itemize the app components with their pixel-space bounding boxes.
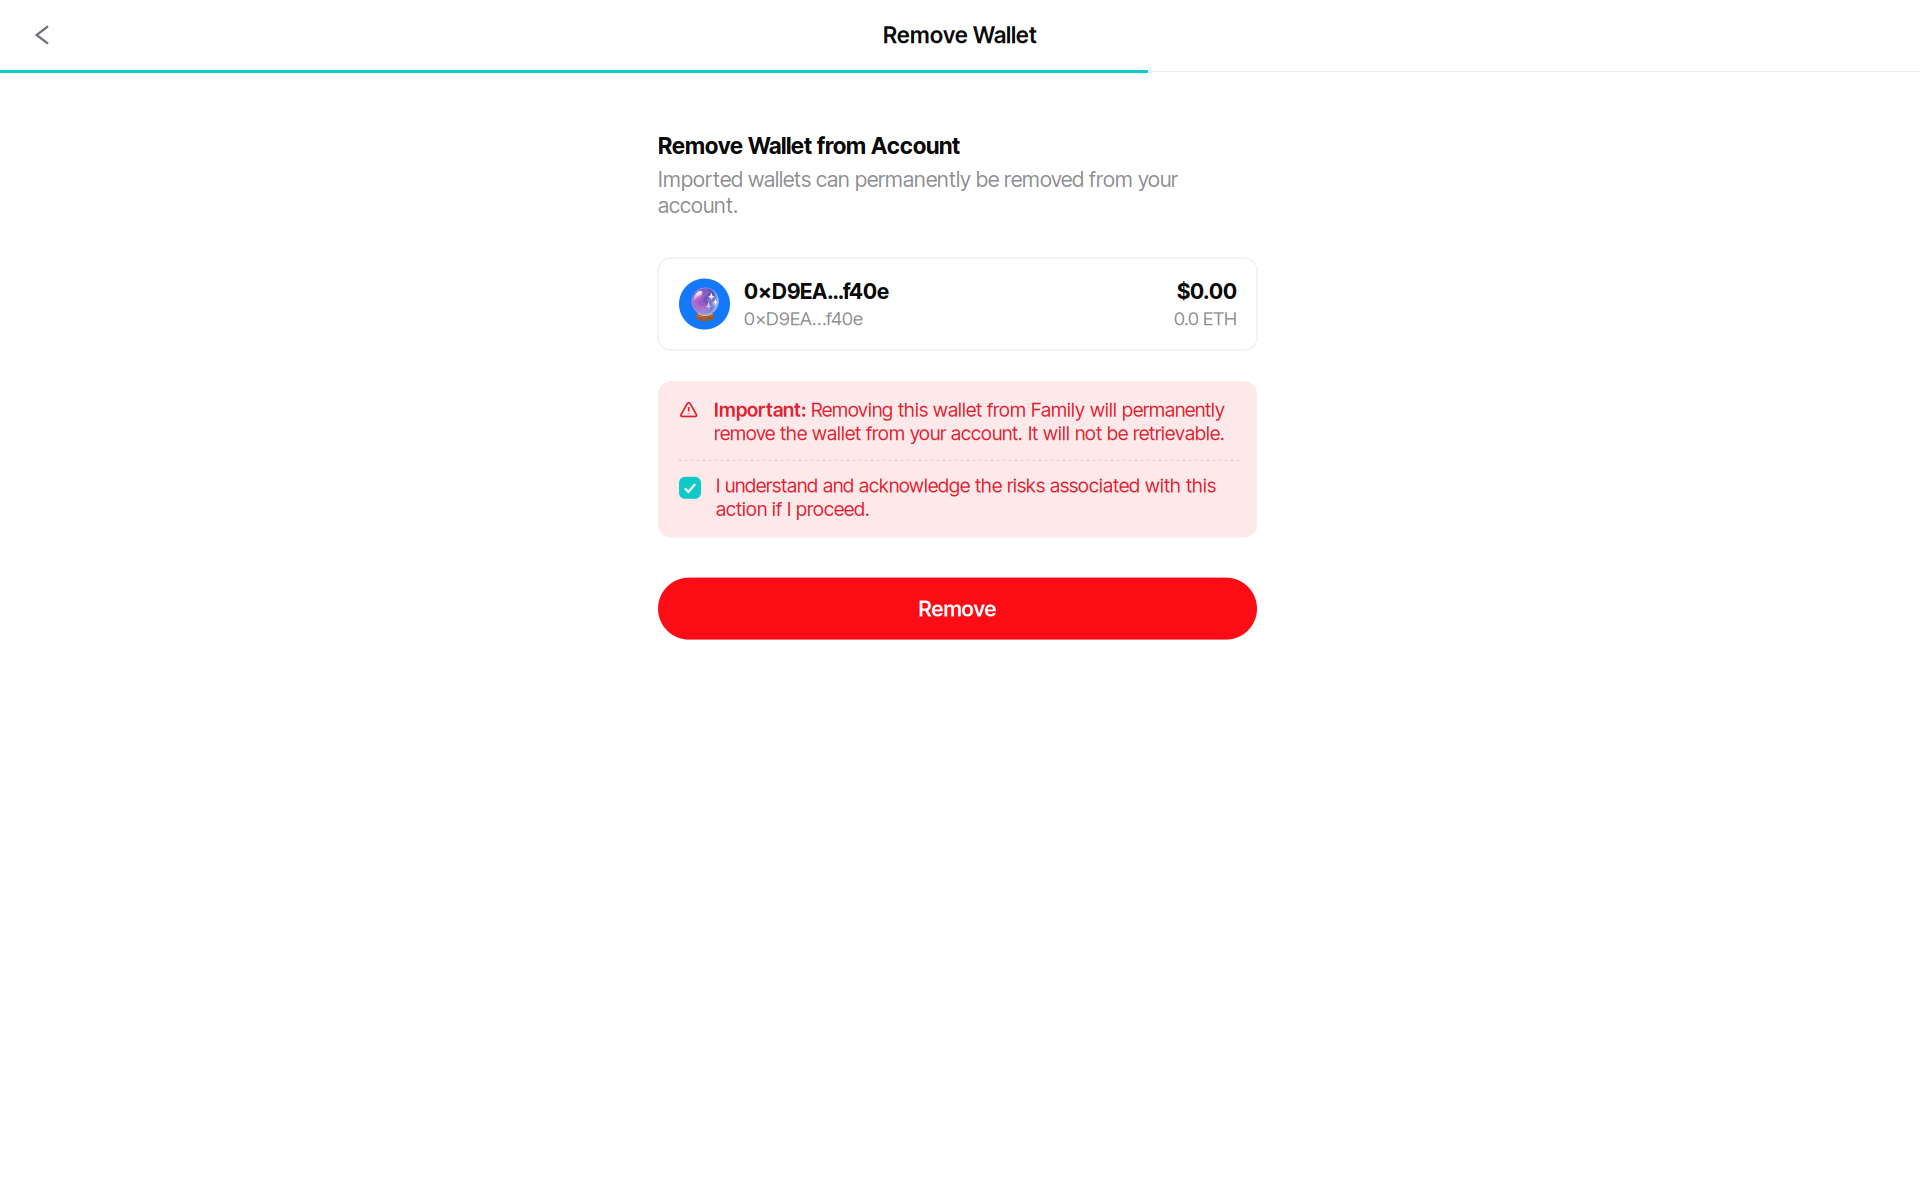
staticText: 0.0 ETH: [1174, 307, 1237, 330]
button[interactable]: Back: [19, 9, 65, 61]
staticText: 🔮: [685, 286, 723, 322]
staticText: 0×D9EA…f40e: [744, 278, 889, 304]
button[interactable]: I understand and acknowledge the risks a…: [679, 474, 1242, 521]
button[interactable]: Remove: [658, 578, 1257, 640]
staticText: Important: Removing this wallet from Fam…: [714, 398, 1225, 445]
staticText: I understand and acknowledge the risks a…: [716, 474, 1216, 521]
staticText: Remove Wallet from Account: [658, 132, 960, 159]
staticText: Imported wallets can permanently be remo…: [658, 166, 1178, 218]
staticText: $0.00: [1177, 278, 1237, 304]
staticText: Remove: [918, 596, 996, 621]
staticText: Remove Wallet: [883, 21, 1037, 49]
staticText: 0×D9EA…f40e: [744, 307, 863, 330]
